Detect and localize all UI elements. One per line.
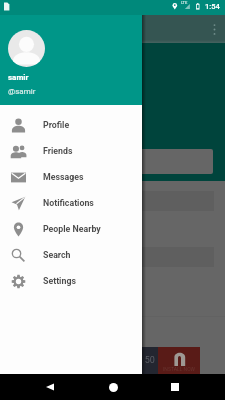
button[interactable]: Notifications	[0, 190, 142, 216]
button[interactable]: Friends	[0, 138, 142, 164]
staticText: Search	[43, 250, 71, 260]
staticText: samir	[8, 73, 29, 82]
staticText: Settings	[43, 276, 76, 286]
staticText: INSTALL NOW	[163, 366, 196, 372]
staticText: @samir	[8, 87, 36, 96]
staticText: Profile	[43, 120, 70, 130]
staticText: Friends	[43, 146, 73, 156]
button[interactable]: Profile picture	[8, 30, 45, 67]
button[interactable]: Messages	[0, 164, 142, 190]
button[interactable]: Advertisement	[0, 347, 158, 374]
staticText: LTE	[181, 0, 188, 5]
button[interactable]: Back	[38, 375, 62, 399]
button[interactable]: More options	[204, 19, 224, 39]
button[interactable]	[0, 191, 214, 211]
button[interactable]: Install app	[158, 347, 200, 374]
staticText: x 50	[138, 355, 155, 366]
button[interactable]	[8, 149, 213, 174]
button[interactable]: Recents	[163, 375, 187, 399]
staticText: People Nearby	[43, 224, 101, 234]
staticText: Notifications	[43, 198, 94, 208]
button[interactable]	[0, 247, 214, 267]
button[interactable]: Profile	[0, 112, 142, 138]
staticText: Messages	[43, 172, 84, 182]
button[interactable]: Search	[0, 242, 142, 268]
button[interactable]: Home	[101, 375, 125, 399]
staticText: 1:54	[205, 2, 220, 11]
button[interactable]: People Nearby	[0, 216, 142, 242]
button[interactable]: Settings	[0, 268, 142, 294]
